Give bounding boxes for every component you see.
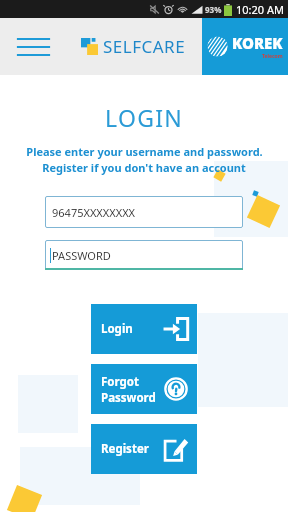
staticText: 96475XXXXXXXX xyxy=(52,205,136,220)
staticText: SELFCARE xyxy=(103,35,186,58)
staticText: LOGIN xyxy=(105,102,184,133)
staticText: 93% xyxy=(205,4,222,15)
button[interactable]: Register xyxy=(91,424,197,474)
button[interactable]: Menu xyxy=(14,30,52,64)
button[interactable]: Forgot Password xyxy=(91,364,197,414)
staticText: Telecom xyxy=(262,53,283,60)
staticText: Please enter your username and password. xyxy=(26,144,263,159)
staticText: Login xyxy=(101,321,133,337)
staticText: Register xyxy=(101,441,149,457)
staticText: 10:20 AM xyxy=(236,2,284,17)
button[interactable]: Korek Telecom xyxy=(202,18,288,75)
button[interactable]: SELFCARE xyxy=(81,35,186,58)
staticText: Forgot Password xyxy=(101,374,156,405)
button[interactable]: Login xyxy=(91,304,197,354)
staticText: PASSWORD xyxy=(52,248,111,263)
staticText: KOREK xyxy=(232,33,283,53)
button[interactable]: 96475XXXXXXXX xyxy=(45,196,243,228)
button[interactable]: PASSWORD xyxy=(45,240,243,270)
staticText: Register if you don't have an account xyxy=(42,160,246,175)
